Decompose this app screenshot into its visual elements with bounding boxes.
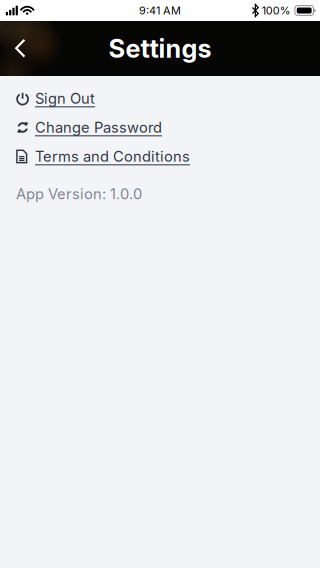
staticText: 100%: [262, 4, 291, 17]
button[interactable]: Change Password: [0, 113, 320, 142]
staticText: Settings: [108, 33, 211, 64]
staticText: 9:41 AM: [139, 4, 181, 17]
staticText: Terms and Conditions: [35, 148, 190, 165]
staticText: Sign Out: [35, 90, 95, 107]
button[interactable]: Terms and Conditions: [0, 142, 320, 171]
button[interactable]: Sign Out: [0, 84, 320, 113]
staticText: App Version: 1.0.0: [16, 185, 142, 203]
button[interactable]: Back: [0, 25, 38, 72]
staticText: Change Password: [35, 119, 162, 136]
